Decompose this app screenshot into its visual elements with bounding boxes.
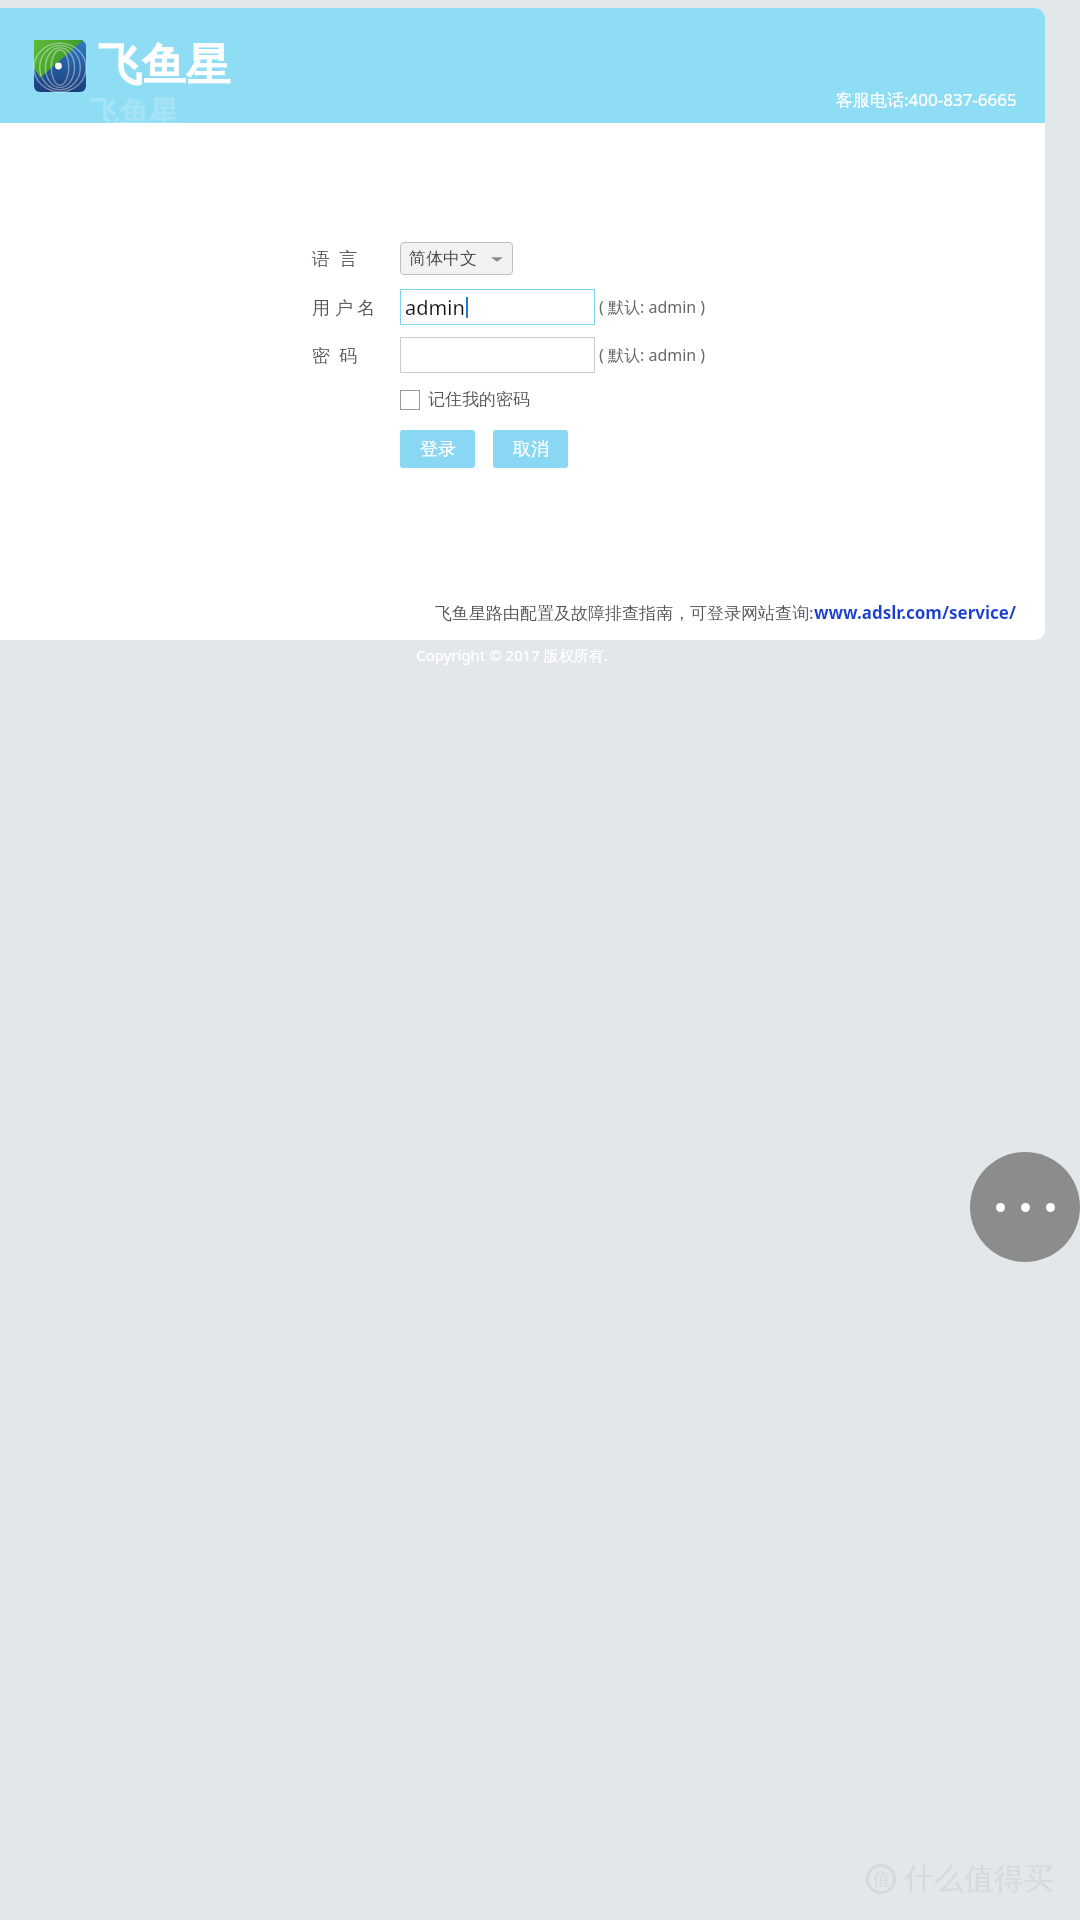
staticText: Copyright © 2017 版权所有. <box>0 645 1024 665</box>
staticText: admin <box>405 294 465 321</box>
button[interactable] <box>400 337 595 373</box>
staticText: 记住我的密码 <box>428 389 530 410</box>
staticText: 值 <box>873 1869 890 1890</box>
staticText: ( 默认: admin ) <box>599 296 706 318</box>
button[interactable]: 简体中文 <box>400 242 513 275</box>
button[interactable]: 取消 <box>493 430 568 468</box>
button[interactable]: 登录 <box>400 430 475 468</box>
staticText: 登录 <box>420 438 456 461</box>
button[interactable]: More options <box>970 1152 1080 1262</box>
button[interactable]: 客服电话:400-837-6665 <box>836 88 1017 111</box>
staticText: 飞鱼星 <box>98 38 230 93</box>
button[interactable]: www.adslr.com/service/ <box>814 601 1017 624</box>
button[interactable]: admin <box>400 289 595 325</box>
staticText: 取消 <box>513 438 549 461</box>
staticText: ( 默认: admin ) <box>599 344 706 366</box>
staticText: 什么值得买 <box>904 1860 1054 1898</box>
staticText: 语 言 <box>312 246 358 271</box>
staticText: 密 码 <box>312 343 358 368</box>
staticText: 飞鱼星路由配置及故障排查指南，可登录网站查询: <box>435 601 814 624</box>
button[interactable]: 记住我的密码 <box>400 389 530 410</box>
staticText: 简体中文 <box>409 248 477 269</box>
staticText: 飞鱼星 <box>89 94 179 132</box>
staticText: 用 户 名 <box>312 295 376 320</box>
